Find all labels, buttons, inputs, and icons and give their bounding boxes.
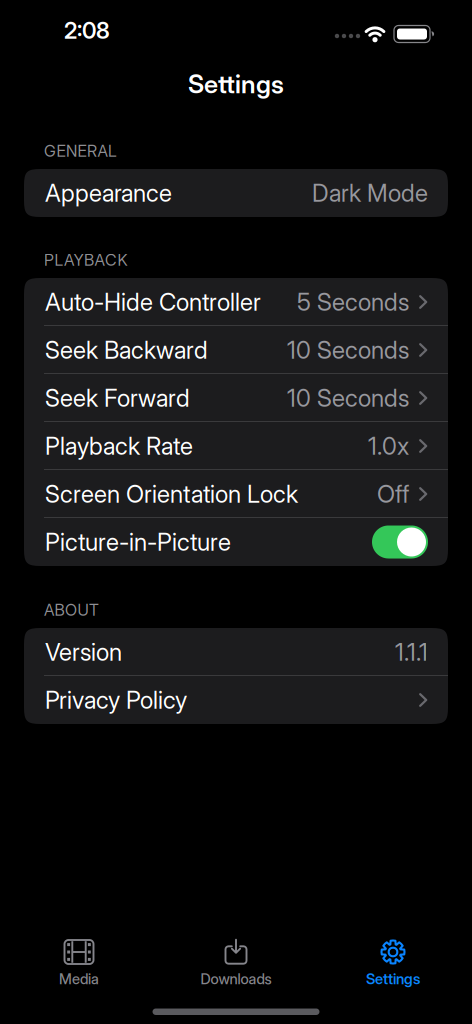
button[interactable]: Media <box>0 939 157 988</box>
button[interactable]: Seek Forward <box>24 374 448 422</box>
staticText: Settings <box>366 970 420 988</box>
button[interactable]: Playback Rate <box>24 422 448 470</box>
button[interactable]: Picture-in-Picture <box>372 525 428 558</box>
staticText: 1.0x <box>368 431 409 460</box>
staticText: 10 Seconds <box>287 335 409 364</box>
staticText: Seek Forward <box>45 383 190 412</box>
staticText: 5 Seconds <box>297 287 409 316</box>
button[interactable]: Settings <box>314 939 471 988</box>
staticText: Off <box>377 479 409 508</box>
staticText: Playback Rate <box>45 431 193 460</box>
button[interactable]: Screen Orientation Lock <box>24 470 448 518</box>
staticText: Settings <box>188 69 284 99</box>
staticText: Version <box>45 637 122 666</box>
button[interactable]: Appearance <box>24 169 448 217</box>
staticText: Screen Orientation Lock <box>45 479 298 508</box>
staticText: Downloads <box>200 970 271 988</box>
staticText: Auto-Hide Controller <box>45 287 261 316</box>
staticText: ABOUT <box>44 600 99 620</box>
staticText: Media <box>59 970 99 988</box>
staticText: PLAYBACK <box>44 250 127 270</box>
button[interactable]: Picture-in-Picture <box>24 518 448 566</box>
staticText: 2:08 <box>64 17 110 44</box>
staticText: 10 Seconds <box>287 383 409 412</box>
button[interactable]: Downloads <box>157 939 314 988</box>
staticText: Privacy Policy <box>45 685 187 714</box>
staticText: 1.1.1 <box>395 637 428 666</box>
staticText: Picture-in-Picture <box>45 527 231 556</box>
button[interactable]: Auto-Hide Controller <box>24 278 448 326</box>
button[interactable]: Privacy Policy <box>24 676 448 724</box>
staticText: Dark Mode <box>312 178 428 207</box>
staticText: Appearance <box>45 178 172 207</box>
staticText: GENERAL <box>44 141 117 161</box>
staticText: Seek Backward <box>45 335 208 364</box>
button[interactable]: Seek Backward <box>24 326 448 374</box>
